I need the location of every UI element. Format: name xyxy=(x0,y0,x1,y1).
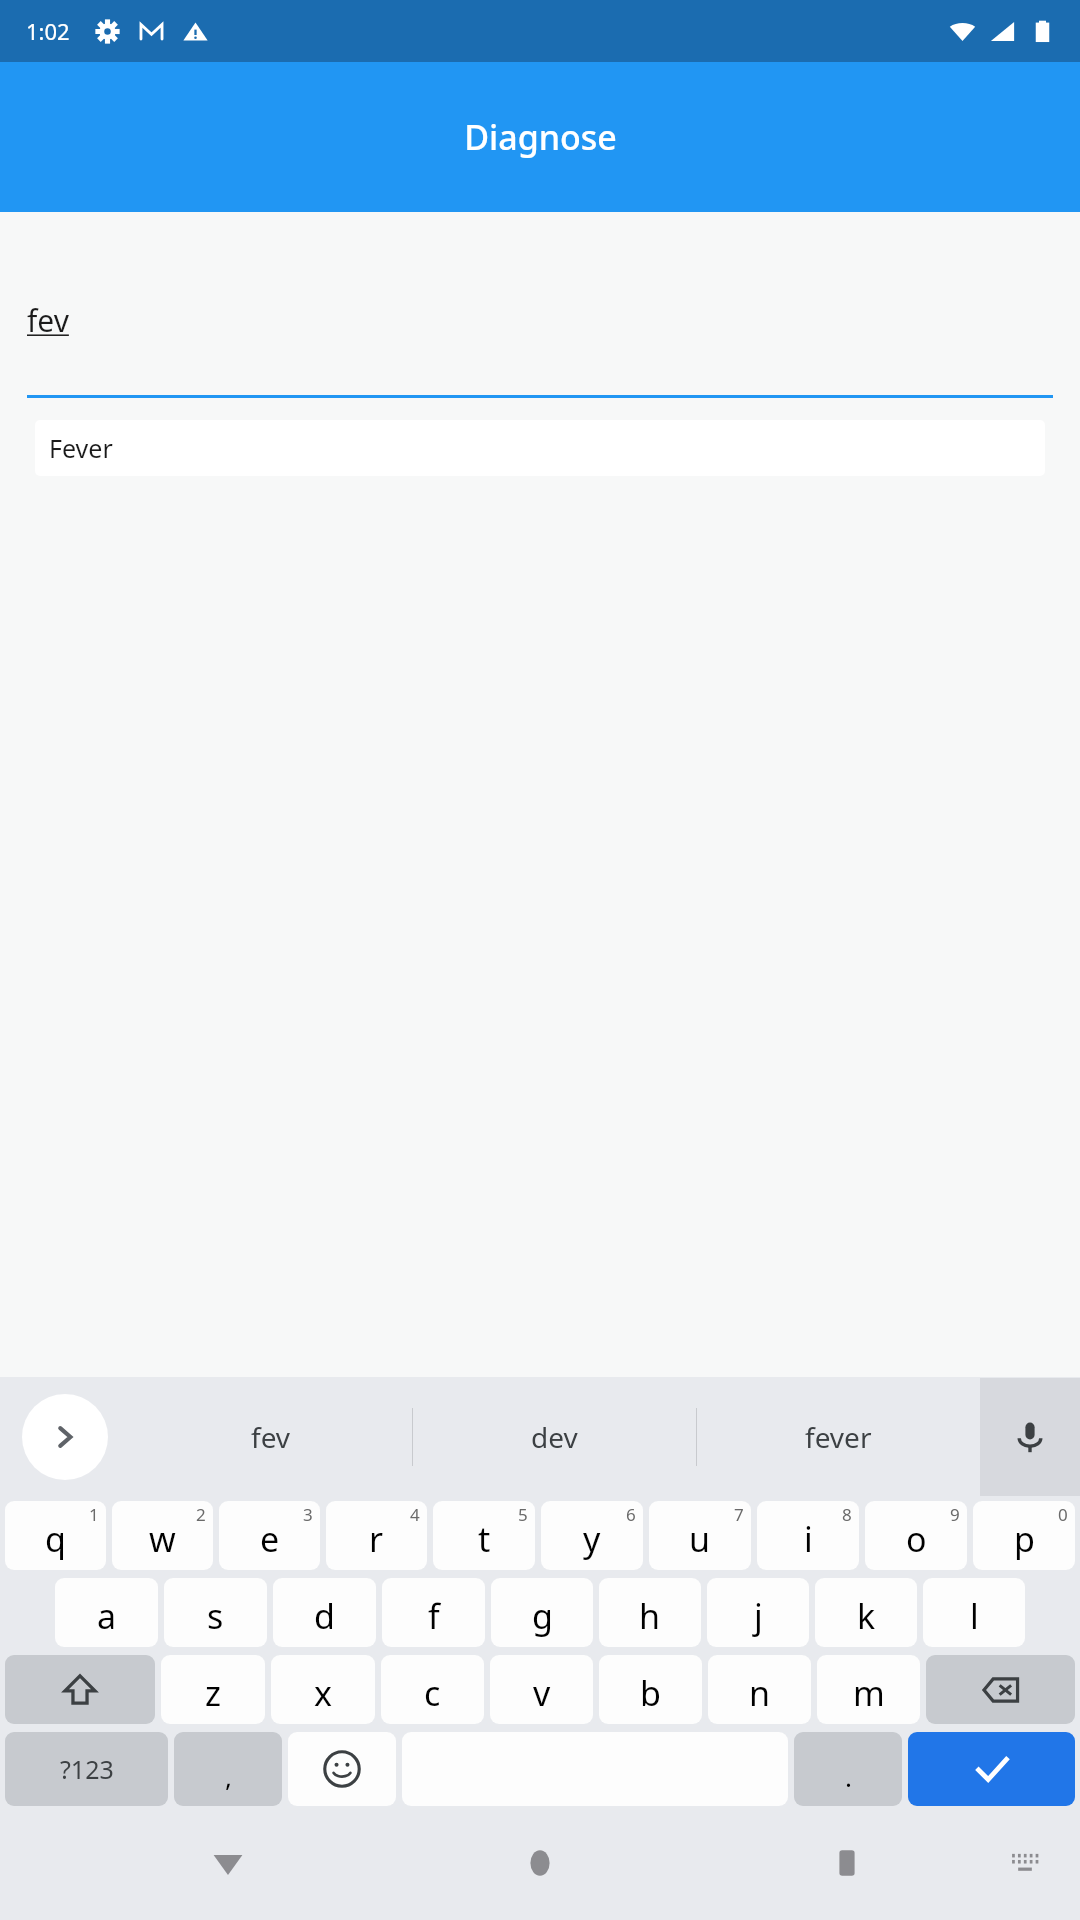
staticText: fev xyxy=(251,1418,291,1456)
button[interactable]: Fever xyxy=(35,420,1045,476)
button[interactable]: ?123 xyxy=(5,1732,168,1806)
button[interactable]: n xyxy=(708,1655,811,1724)
staticText: 1:02 xyxy=(26,16,70,46)
staticText: y xyxy=(583,1516,601,1562)
button[interactable]: Comma xyxy=(174,1732,282,1806)
button[interactable]: f xyxy=(382,1578,485,1647)
staticText: d xyxy=(314,1593,335,1639)
staticText: 2 xyxy=(196,1503,206,1526)
staticText: dev xyxy=(531,1418,578,1456)
button[interactable]: d xyxy=(273,1578,376,1647)
staticText: u xyxy=(689,1516,711,1562)
staticText: p xyxy=(1014,1516,1035,1562)
staticText: 1 xyxy=(89,1503,99,1526)
staticText: b xyxy=(640,1670,661,1716)
staticText: c xyxy=(424,1670,441,1716)
staticText: z xyxy=(205,1670,221,1716)
button[interactable]: Done xyxy=(908,1732,1075,1806)
staticText: r xyxy=(369,1516,384,1562)
button[interactable]: Switch keyboard xyxy=(970,1822,1080,1920)
staticText: 9 xyxy=(950,1503,960,1526)
button[interactable]: j xyxy=(707,1578,809,1647)
button[interactable]: x xyxy=(271,1655,375,1724)
button[interactable]: g xyxy=(491,1578,593,1647)
button[interactable]: y xyxy=(541,1501,643,1570)
staticText: Fever xyxy=(49,431,113,465)
button[interactable]: u xyxy=(649,1501,751,1570)
button[interactable]: b xyxy=(599,1655,702,1724)
button[interactable]: c xyxy=(381,1655,484,1724)
button[interactable]: v xyxy=(490,1655,593,1724)
staticText: 0 xyxy=(1058,1503,1068,1526)
button[interactable]: o xyxy=(865,1501,967,1570)
button[interactable]: q xyxy=(5,1501,106,1570)
button[interactable]: i xyxy=(757,1501,859,1570)
button[interactable]: k xyxy=(815,1578,917,1647)
staticText: x xyxy=(314,1670,332,1716)
button[interactable]: z xyxy=(161,1655,265,1724)
staticText: g xyxy=(532,1593,553,1639)
button[interactable]: Emoji xyxy=(288,1732,396,1806)
button[interactable]: e xyxy=(219,1501,320,1570)
staticText: 4 xyxy=(410,1503,420,1526)
staticText: o xyxy=(906,1516,927,1562)
button[interactable]: Period xyxy=(794,1732,902,1806)
button[interactable]: t xyxy=(433,1501,535,1570)
button[interactable]: Backspace xyxy=(926,1655,1075,1724)
staticText: e xyxy=(260,1516,280,1562)
staticText: q xyxy=(45,1516,66,1562)
staticText: w xyxy=(149,1516,176,1562)
staticText: ?123 xyxy=(60,1752,114,1786)
button[interactable]: p xyxy=(973,1501,1075,1570)
button[interactable]: s xyxy=(164,1578,267,1647)
button[interactable]: a xyxy=(55,1578,158,1647)
staticText: a xyxy=(97,1593,117,1639)
staticText: 7 xyxy=(734,1503,744,1526)
staticText: m xyxy=(853,1670,885,1716)
button[interactable]: dev xyxy=(413,1377,696,1497)
staticText: 5 xyxy=(518,1503,528,1526)
staticText: t xyxy=(478,1516,491,1562)
staticText: v xyxy=(533,1670,551,1716)
staticText: , xyxy=(225,1759,232,1794)
staticText: 3 xyxy=(303,1503,313,1526)
staticText: k xyxy=(857,1593,876,1639)
button[interactable]: fev xyxy=(27,274,1053,398)
staticText: 8 xyxy=(842,1503,852,1526)
staticText: 6 xyxy=(626,1503,636,1526)
button[interactable]: Home xyxy=(455,1822,625,1920)
button[interactable]: Recents xyxy=(762,1822,932,1920)
staticText: Diagnose xyxy=(464,114,617,160)
button[interactable]: Back xyxy=(143,1822,313,1920)
staticText: n xyxy=(749,1670,771,1716)
button[interactable]: w xyxy=(112,1501,213,1570)
staticText: i xyxy=(804,1516,813,1562)
staticText: f xyxy=(428,1593,440,1639)
staticText: j xyxy=(754,1593,763,1639)
staticText: . xyxy=(845,1759,852,1794)
button[interactable]: fev xyxy=(130,1377,412,1497)
button[interactable]: More suggestions xyxy=(22,1394,108,1480)
button[interactable]: Voice input xyxy=(980,1378,1080,1496)
staticText: fever xyxy=(805,1418,872,1456)
button[interactable]: r xyxy=(326,1501,427,1570)
staticText: s xyxy=(207,1593,224,1639)
button[interactable]: fever xyxy=(697,1377,980,1497)
button[interactable]: Shift xyxy=(5,1655,155,1724)
button[interactable]: m xyxy=(817,1655,920,1724)
staticText: fev xyxy=(27,300,69,341)
staticText: h xyxy=(639,1593,661,1639)
button[interactable]: l xyxy=(923,1578,1025,1647)
button[interactable]: h xyxy=(599,1578,701,1647)
staticText: l xyxy=(970,1593,979,1639)
